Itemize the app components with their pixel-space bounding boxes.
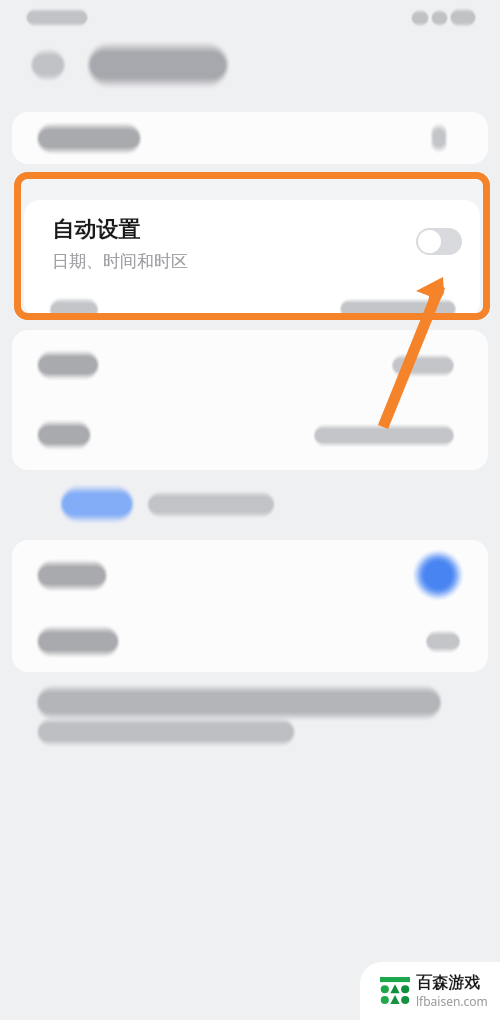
- staticText: lfbaisen.com: [416, 993, 488, 1009]
- button[interactable]: 自动设置开关: [416, 228, 462, 255]
- button[interactable]: [12, 400, 488, 470]
- staticText: 自动设置: [52, 216, 140, 244]
- staticText: 日期、时间和时区: [52, 251, 188, 272]
- button[interactable]: [12, 330, 488, 400]
- button[interactable]: [12, 610, 488, 672]
- button[interactable]: [12, 112, 488, 164]
- button[interactable]: [12, 540, 488, 610]
- staticText: 百森游戏: [416, 973, 480, 993]
- button[interactable]: 自动设置: [24, 200, 480, 318]
